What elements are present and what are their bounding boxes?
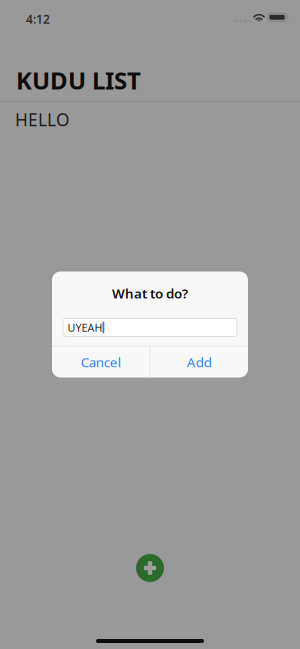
staticText: What to do? xyxy=(112,284,188,302)
button[interactable]: Add item xyxy=(136,554,164,582)
staticText: HELLO xyxy=(15,108,70,131)
button[interactable]: Add xyxy=(150,346,248,377)
staticText: Add xyxy=(187,353,212,371)
staticText: KUDU LIST xyxy=(16,64,141,96)
staticText: Cancel xyxy=(81,353,121,371)
button[interactable]: Cancel xyxy=(52,346,149,377)
staticText: 4:12 xyxy=(26,11,50,27)
staticText: UYEAH xyxy=(67,320,102,335)
button[interactable]: HELLO xyxy=(0,102,300,128)
